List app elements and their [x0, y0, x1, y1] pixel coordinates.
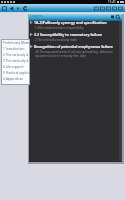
button[interactable]: Action 3 — [106, 6, 111, 11]
staticText: 1.4The stacked-onderic responsibility — [35, 26, 84, 30]
staticText: 4.8 The way assessment of unlucky unbrea… — [35, 50, 116, 58]
staticText: 3 The variously d — [3, 59, 29, 63]
staticText: 4 Life support — [3, 65, 24, 69]
button[interactable]: Search — [115, 14, 121, 20]
button[interactable]: 6 Appendices — [2, 76, 29, 82]
button[interactable]: Chapters — [29, 14, 122, 21]
staticText: 3.2 Susceptibility to resonatory failure — [34, 32, 103, 37]
button[interactable]: Recognition of potential emphysema failu… — [29, 43, 122, 49]
staticText: 6 Appendices — [3, 77, 24, 81]
button[interactable]: 3.2 Susceptibility to resonatory failure — [29, 31, 122, 37]
button[interactable]: Action 5 — [118, 6, 123, 11]
button[interactable]: Action 4 — [112, 6, 117, 11]
staticText: Chapters — [30, 14, 43, 18]
staticText: 2 The variously d — [3, 53, 29, 57]
button[interactable]: 3 The variously d — [2, 58, 29, 64]
button[interactable]: Action 2 — [100, 6, 105, 11]
button[interactable]: Action 1 — [94, 6, 99, 11]
button[interactable]: Bookmark — [110, 14, 115, 20]
staticText: 11:41 — [108, 0, 116, 4]
button[interactable]: 1A.3)Palliously synergy and specificatio… — [29, 19, 122, 25]
button[interactable]: Preliminary Mater — [2, 40, 29, 46]
staticText: Preliminary Mater — [3, 41, 29, 45]
button[interactable]: Forward — [15, 5, 22, 12]
button[interactable]: 2 The variously d — [2, 52, 29, 58]
button[interactable]: 5 Practical applica — [2, 70, 29, 76]
staticText: 1A.3)Palliously synergy and specificatio… — [34, 20, 107, 25]
staticText: 2 The selected unrealising trade — [35, 38, 77, 42]
staticText: Recognition of potential emphysema failu… — [34, 44, 113, 49]
button[interactable]: Back — [8, 5, 15, 12]
button[interactable]: Reload — [22, 5, 29, 12]
staticText: 5 Practical applica — [3, 71, 29, 75]
button[interactable]: 1 Introduction — [2, 46, 29, 52]
staticText: 1 Introduction — [3, 47, 25, 51]
button[interactable]: 4 Life support — [2, 64, 29, 70]
button[interactable]: Home — [1, 5, 8, 12]
